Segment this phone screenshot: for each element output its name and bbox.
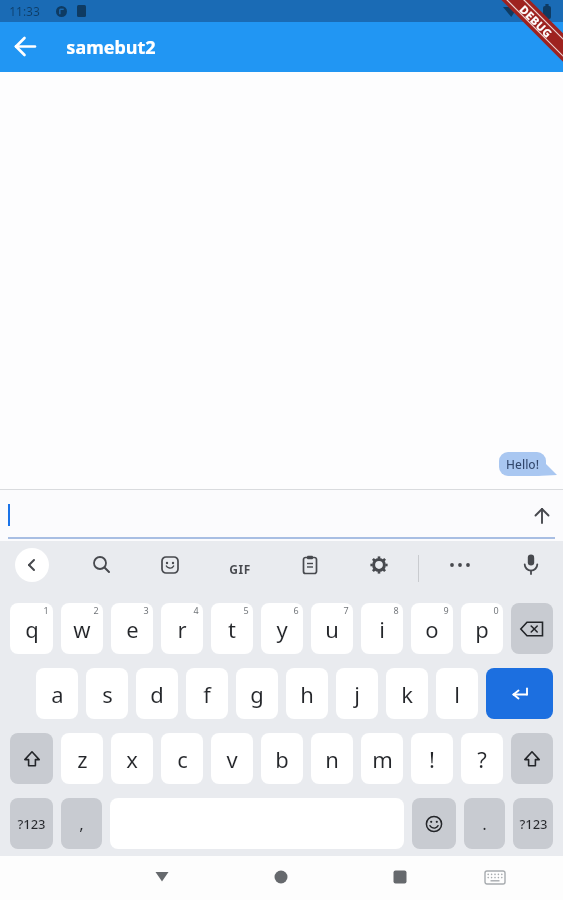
button[interactable]: h — [286, 668, 328, 719]
button[interactable]: ?123 — [513, 798, 553, 849]
staticText: c — [177, 744, 188, 774]
button[interactable] — [412, 798, 456, 849]
button[interactable]: y — [261, 603, 303, 654]
staticText: x — [126, 744, 138, 774]
staticText: g — [250, 679, 264, 709]
staticText: 11:33 — [9, 3, 40, 19]
staticText: t — [228, 614, 236, 644]
button[interactable]: m — [361, 733, 403, 784]
staticText: 2 — [93, 604, 99, 616]
button[interactable]: a — [36, 668, 78, 719]
staticText: ?123 — [519, 815, 548, 833]
button[interactable] — [369, 555, 389, 575]
button[interactable] — [448, 557, 472, 573]
button[interactable]: ?123 — [10, 798, 53, 849]
button[interactable]: g — [236, 668, 278, 719]
button[interactable]: o — [411, 603, 453, 654]
staticText: f — [203, 679, 211, 709]
button[interactable]: f — [186, 668, 228, 719]
staticText: 4 — [193, 604, 199, 616]
staticText: m — [372, 744, 393, 774]
button[interactable]: l — [436, 668, 478, 719]
staticText: s — [102, 679, 113, 709]
staticText: k — [401, 679, 413, 709]
staticText: ? — [477, 744, 487, 774]
button[interactable] — [532, 506, 552, 526]
staticText: w — [73, 614, 91, 644]
staticText: 0 — [493, 604, 499, 616]
staticText: 7 — [343, 604, 349, 616]
button[interactable]: c — [161, 733, 203, 784]
button[interactable]: w — [61, 603, 103, 654]
button[interactable]: j — [336, 668, 378, 719]
staticText: 9 — [443, 604, 449, 616]
staticText: a — [51, 679, 64, 709]
staticText: , — [79, 812, 84, 835]
staticText: q — [25, 614, 39, 644]
staticText: p — [475, 614, 489, 644]
button[interactable]: t — [211, 603, 253, 654]
staticText: h — [300, 679, 314, 709]
button[interactable]: q — [10, 603, 53, 654]
staticText: GIF — [229, 561, 251, 577]
button[interactable] — [274, 870, 288, 884]
staticText: 8 — [393, 604, 399, 616]
button[interactable] — [155, 871, 169, 883]
staticText: u — [325, 614, 339, 644]
staticText: 5 — [243, 604, 249, 616]
button[interactable]: b — [261, 733, 303, 784]
button[interactable] — [301, 555, 319, 575]
button[interactable]: n — [311, 733, 353, 784]
staticText: y — [276, 614, 288, 644]
button[interactable]: p — [461, 603, 503, 654]
staticText: . — [482, 812, 487, 835]
button[interactable] — [92, 555, 112, 575]
button[interactable]: i — [361, 603, 403, 654]
button[interactable]: ? — [461, 733, 503, 784]
button[interactable]: r — [161, 603, 203, 654]
button[interactable] — [0, 490, 563, 541]
button[interactable]: . — [464, 798, 505, 849]
staticText: e — [126, 614, 139, 644]
button[interactable]: , — [61, 798, 102, 849]
staticText: n — [325, 744, 339, 774]
button[interactable] — [511, 603, 553, 654]
button[interactable]: e — [111, 603, 153, 654]
button[interactable]: u — [311, 603, 353, 654]
staticText: 6 — [293, 604, 299, 616]
staticText: z — [77, 744, 88, 774]
staticText: o — [425, 614, 439, 644]
button[interactable]: s — [86, 668, 128, 719]
staticText: 3 — [143, 604, 149, 616]
button[interactable] — [393, 870, 407, 884]
button[interactable] — [10, 733, 53, 784]
button[interactable]: ! — [411, 733, 453, 784]
staticText: 1 — [43, 604, 49, 616]
button[interactable] — [485, 871, 505, 884]
button[interactable] — [511, 733, 553, 784]
button[interactable]: d — [136, 668, 178, 719]
button[interactable] — [15, 36, 36, 57]
button[interactable]: v — [211, 733, 253, 784]
button[interactable] — [486, 668, 553, 719]
staticText: ! — [429, 744, 435, 774]
button[interactable] — [521, 553, 541, 577]
staticText: i — [379, 614, 385, 644]
staticText: ?123 — [17, 815, 46, 833]
staticText: r — [177, 614, 187, 644]
button[interactable]: x — [111, 733, 153, 784]
button[interactable]: k — [386, 668, 428, 719]
button[interactable]: z — [61, 733, 103, 784]
button[interactable] — [15, 548, 49, 582]
staticText: l — [454, 679, 460, 709]
staticText: d — [150, 679, 164, 709]
staticText: Hello! — [506, 456, 539, 472]
staticText: v — [226, 744, 238, 774]
staticText: DEBUG — [516, 2, 556, 41]
button[interactable]: GIF — [226, 557, 254, 581]
staticText: samebut2 — [66, 35, 156, 60]
staticText: b — [275, 744, 289, 774]
staticText: j — [354, 679, 360, 709]
button[interactable] — [161, 556, 179, 574]
